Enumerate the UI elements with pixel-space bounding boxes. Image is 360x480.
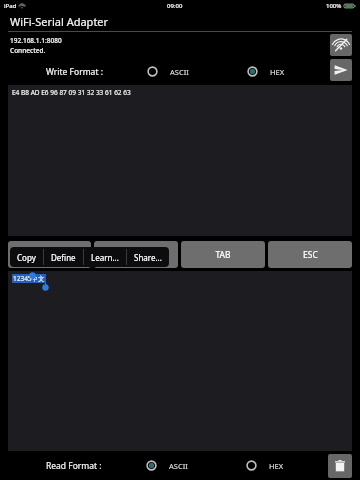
button[interactable]: E4 B8 AD E6 96 87 09 31 32 33 61 62 63 <box>8 85 352 236</box>
staticText: Define <box>51 252 76 263</box>
staticText: HEX <box>270 67 285 77</box>
staticText: Read Format : <box>46 460 102 472</box>
staticText: ASCII <box>169 461 188 471</box>
staticText: HEX <box>269 461 284 471</box>
staticText: WiFi-Serial Adapter <box>10 14 109 29</box>
staticText: TAB <box>215 249 231 261</box>
staticText: 192.168.1.1:8080 <box>10 36 62 45</box>
staticText: iPad <box>4 2 17 10</box>
button[interactable]: ESC <box>268 241 352 268</box>
button[interactable]: Share... <box>127 247 169 267</box>
staticText: Connected. <box>10 46 46 55</box>
button[interactable]: ASCII <box>145 64 191 79</box>
button[interactable]: Send <box>330 59 352 81</box>
staticText: 100% <box>326 2 342 10</box>
staticText: Share... <box>134 252 162 263</box>
button[interactable]: Define <box>44 247 83 267</box>
button[interactable]: Copy <box>10 247 43 267</box>
button[interactable]: TAB <box>181 241 265 268</box>
button[interactable]: ASCII <box>144 458 190 473</box>
staticText: ESC <box>303 249 318 261</box>
button[interactable]: Clear <box>328 454 352 478</box>
button[interactable]: HEX <box>244 458 286 473</box>
staticText: E4 B8 AD E6 96 87 09 31 32 33 61 62 63 <box>12 88 131 97</box>
button[interactable] <box>94 241 178 268</box>
staticText: 09:00 <box>167 2 183 10</box>
staticText: Learn... <box>91 252 119 263</box>
button[interactable]: HEX <box>245 64 287 79</box>
button[interactable]: Disconnect <box>330 34 352 56</box>
button[interactable]: Learn... <box>84 247 126 267</box>
staticText: ASCII <box>170 67 189 77</box>
button[interactable]: 12345中文 <box>8 271 352 451</box>
staticText: Write Format : <box>46 66 103 78</box>
staticText: Copy <box>17 252 36 263</box>
button[interactable] <box>8 241 91 268</box>
staticText: 12345中文 <box>13 274 45 283</box>
